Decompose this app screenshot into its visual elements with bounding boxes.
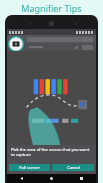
button[interactable]: Cancel — [52, 164, 94, 171]
button[interactable]: Full screen — [9, 164, 50, 171]
staticText: Full screen — [19, 165, 40, 170]
staticText: Cancel — [67, 165, 80, 170]
button[interactable]: Home — [50, 177, 53, 180]
staticText: Magnifier Tips — [21, 2, 82, 14]
staticText: Pick the area of the screen that you wan… — [11, 147, 92, 157]
button[interactable]: Back — [20, 177, 23, 180]
